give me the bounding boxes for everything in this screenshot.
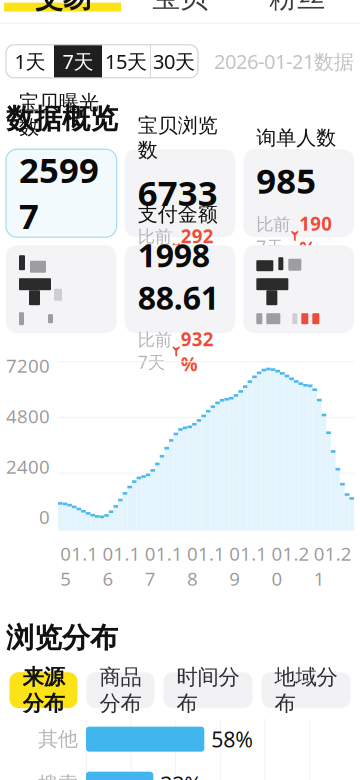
staticText: 询单人数 <box>256 126 336 150</box>
staticText: 01.16 <box>102 541 140 591</box>
staticText: 6733 <box>138 169 218 215</box>
staticText: 4800 <box>6 404 50 428</box>
button[interactable]: 商品分布 <box>86 672 154 708</box>
staticText: 58% <box>211 725 253 753</box>
button[interactable]: 1天 <box>6 45 54 78</box>
staticText: 932% <box>181 327 214 376</box>
staticText: 来源分布 <box>22 664 64 716</box>
staticText: 7天 <box>62 48 93 75</box>
staticText: 292% <box>181 223 214 273</box>
button[interactable]: 30天 <box>150 45 198 78</box>
staticText: 比前7天 <box>138 226 172 270</box>
button[interactable]: 粉丝 <box>239 0 356 23</box>
staticText: 30天 <box>153 48 195 75</box>
staticText: 粉丝 <box>269 0 325 15</box>
staticText: 宝贝 <box>152 0 208 15</box>
button[interactable]: 支付金额 <box>125 245 235 333</box>
button[interactable]: 数据已隐藏 <box>243 245 354 333</box>
button[interactable]: 地域分布 <box>261 672 350 708</box>
staticText: 0 <box>39 504 50 529</box>
button[interactable]: 7天 <box>54 45 102 78</box>
staticText: 比前7天 <box>256 214 290 258</box>
button[interactable]: 数据已隐藏 <box>6 245 117 333</box>
staticText: 25997 <box>19 146 99 238</box>
staticText: 交易 <box>35 0 91 15</box>
staticText: 2400 <box>6 454 50 479</box>
staticText: 地域分布 <box>274 664 337 716</box>
staticText: 商品分布 <box>99 664 141 716</box>
button[interactable]: 宝贝曝光数 <box>6 149 117 237</box>
staticText: 2026-01-21数据 <box>214 48 354 75</box>
button[interactable]: 交易 <box>4 0 121 23</box>
button[interactable]: 15天 <box>102 45 150 78</box>
staticText: 985 <box>256 157 316 203</box>
button[interactable]: 宝贝 <box>121 0 239 23</box>
staticText: 宝贝浏览数 <box>138 113 218 162</box>
staticText: 搜索 <box>38 772 78 780</box>
staticText: 支付金额 <box>138 202 218 227</box>
staticText: 01.15 <box>60 541 98 591</box>
button[interactable]: 时间分布 <box>163 672 252 708</box>
staticText: 01.20 <box>272 541 310 591</box>
staticText: 1天 <box>14 48 45 75</box>
staticText: 01.18 <box>187 541 225 591</box>
staticText: 190% <box>299 211 332 261</box>
staticText: 01.19 <box>229 541 267 591</box>
button[interactable]: 宝贝浏览数 <box>125 149 235 237</box>
staticText: 数据概览 <box>6 102 118 136</box>
staticText: 15天 <box>105 48 147 75</box>
staticText: 其他 <box>38 727 78 751</box>
staticText: 时间分布 <box>176 664 239 716</box>
staticText: 比前7天 <box>138 329 172 374</box>
staticText: 01.17 <box>145 541 183 591</box>
button[interactable]: 询单人数 <box>243 149 354 237</box>
staticText: 199888.61 <box>138 234 219 319</box>
button[interactable]: 来源分布 <box>9 672 77 708</box>
staticText: 比前7天 <box>19 249 53 293</box>
staticText: 浏览分布 <box>6 621 118 655</box>
staticText: 01.21 <box>314 541 352 591</box>
staticText: 33% <box>160 770 202 780</box>
staticText: 宝贝曝光数 <box>19 90 99 139</box>
staticText: 7200 <box>6 353 50 378</box>
